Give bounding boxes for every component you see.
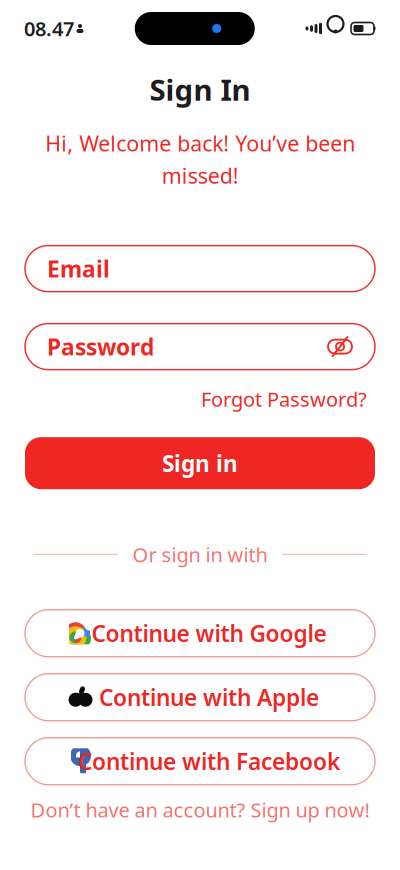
staticText: 08.47 (24, 15, 74, 42)
button[interactable]: Continue with Google (25, 610, 375, 657)
button[interactable]: Show password (327, 336, 353, 358)
staticText: Continue with Facebook (78, 746, 340, 776)
staticText: Continue with Google (91, 618, 326, 648)
button[interactable]: Forgot Password? (201, 386, 367, 412)
button[interactable]: Continue with Apple (25, 674, 375, 721)
staticText: Email (47, 254, 110, 284)
staticText: Forgot Password? (201, 386, 367, 412)
staticText: Hi, Welcome back! You’ve been missed! (45, 129, 355, 190)
staticText: Or sign in with (132, 541, 267, 568)
staticText: Sign In (149, 70, 250, 109)
button[interactable]: Don’t have an account? Sign up now! (30, 796, 369, 823)
staticText: Don’t have an account? Sign up now! (30, 796, 369, 823)
staticText: Password (47, 332, 154, 362)
button[interactable]: Sign in (25, 437, 375, 489)
staticText: Continue with Apple (99, 682, 319, 712)
button[interactable]: Continue with Facebook (25, 738, 375, 785)
staticText: Sign in (162, 448, 238, 478)
